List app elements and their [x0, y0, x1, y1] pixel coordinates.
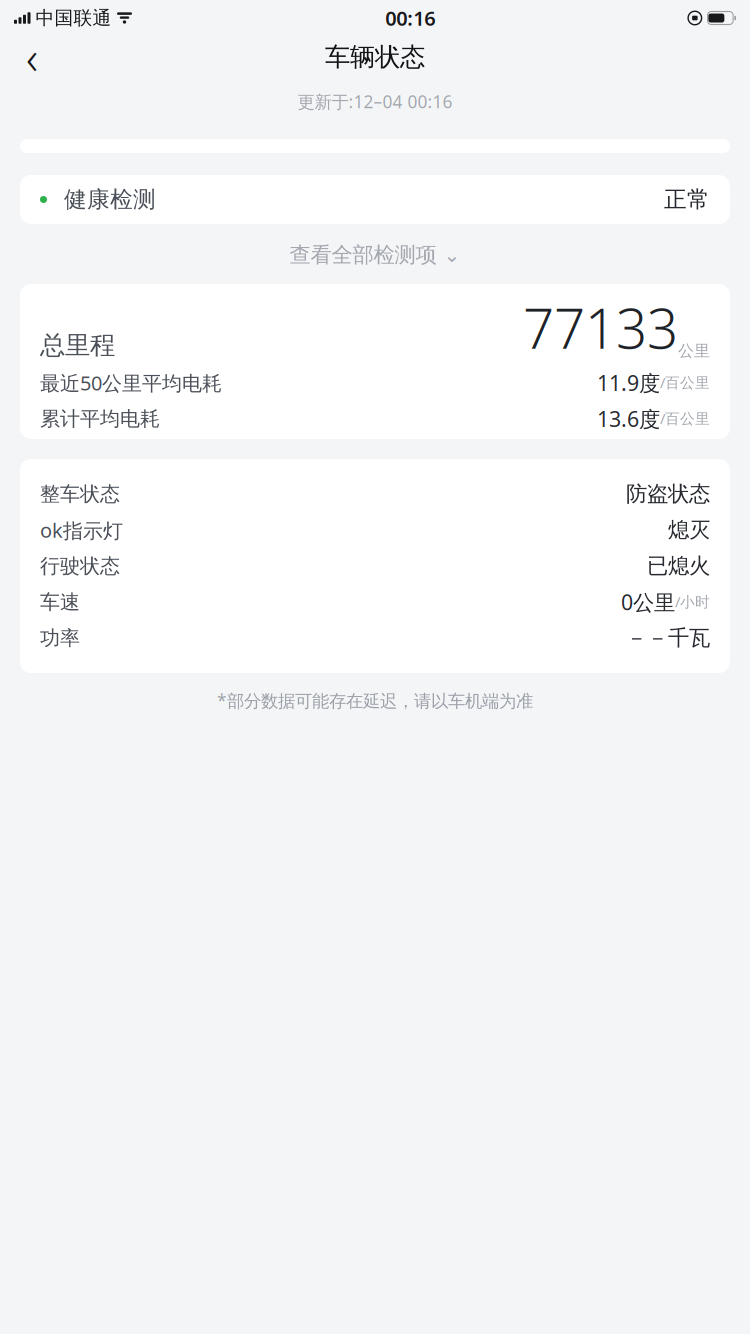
- staticText: ‹: [26, 27, 38, 87]
- staticText: 更新于:12–04 00:16: [297, 90, 452, 113]
- staticText: 车辆状态: [325, 41, 425, 72]
- staticText: 已熄火: [647, 553, 710, 579]
- staticText: 累计平均电耗: [40, 406, 160, 431]
- button[interactable]: 健康检测: [20, 175, 730, 224]
- staticText: 行驶状态: [40, 554, 120, 578]
- staticText: ok指示灯: [40, 517, 123, 543]
- staticText: 中国联通: [35, 6, 111, 29]
- staticText: 00:16: [385, 5, 435, 31]
- staticText: /百公里: [660, 373, 710, 392]
- staticText: 功率: [40, 626, 80, 650]
- staticText: *部分数据可能存在延迟，请以车机端为准: [217, 689, 533, 712]
- staticText: 熄灭: [668, 517, 710, 543]
- staticText: 车速: [40, 590, 80, 614]
- button[interactable]: 返回: [10, 35, 54, 79]
- staticText: 查看全部检测项: [289, 242, 436, 268]
- staticText: 整车状态: [40, 482, 120, 506]
- staticText: 公里: [678, 341, 710, 361]
- staticText: /百公里: [660, 409, 710, 428]
- staticText: 防盗状态: [626, 481, 710, 507]
- staticText: ⌄: [443, 244, 460, 266]
- staticText: 13.6度: [597, 405, 660, 433]
- staticText: －－千瓦: [626, 625, 710, 651]
- staticText: 最近50公里平均电耗: [40, 369, 222, 396]
- staticText: 11.9度: [597, 369, 660, 397]
- button[interactable]: 查看全部检测项: [279, 238, 470, 272]
- staticText: 总里程: [40, 330, 115, 361]
- staticText: 健康检测: [64, 186, 156, 213]
- staticText: 77133: [523, 291, 678, 364]
- staticText: 0公里: [621, 588, 675, 616]
- staticText: 正常: [664, 186, 710, 213]
- staticText: /小时: [675, 592, 710, 611]
